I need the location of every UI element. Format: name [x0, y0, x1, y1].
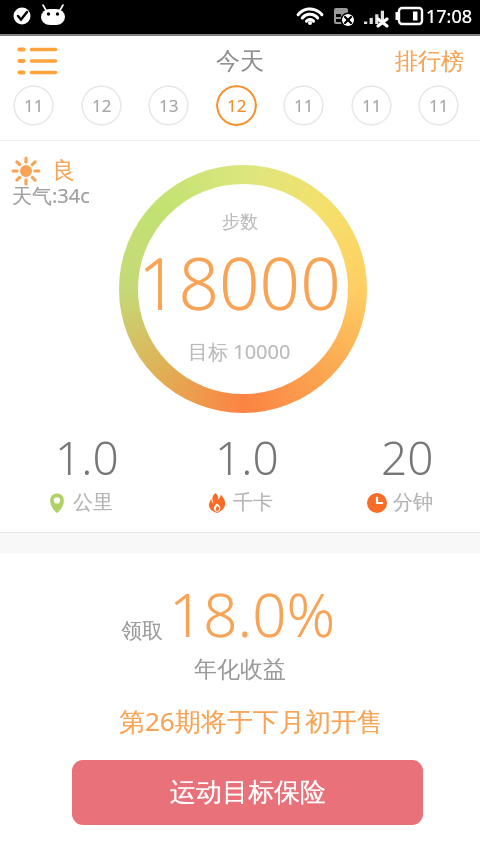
staticText: 12: [227, 94, 247, 117]
staticText: 1.0: [55, 426, 119, 489]
staticText: 千卡: [233, 490, 273, 515]
button[interactable]: 12: [81, 85, 122, 126]
staticText: 11: [429, 94, 449, 117]
staticText: 1.0: [215, 426, 279, 489]
staticText: 11: [362, 94, 382, 117]
staticText: 13: [159, 94, 179, 117]
staticText: 11: [24, 94, 44, 117]
staticText: 排行榜: [395, 47, 464, 76]
staticText: 目标 10000: [188, 338, 291, 365]
staticText: 公里: [73, 490, 113, 515]
button[interactable]: 排行榜: [395, 47, 464, 76]
staticText: 领取: [121, 618, 163, 644]
button[interactable]: 11: [351, 85, 392, 126]
button[interactable]: 11: [283, 85, 324, 126]
staticText: 今天: [216, 46, 264, 76]
button[interactable]: 13: [148, 85, 189, 126]
staticText: 分钟: [393, 490, 433, 515]
button[interactable]: 11: [418, 85, 459, 126]
staticText: 12: [92, 94, 112, 117]
button[interactable]: 12: [216, 85, 257, 126]
staticText: 运动目标保险: [170, 776, 326, 809]
staticText: 天气:34c: [12, 182, 90, 209]
staticText: 第26期将于下月初开售: [119, 703, 383, 739]
staticText: 18.0%: [169, 573, 336, 655]
staticText: 18000: [138, 234, 341, 331]
staticText: 20: [381, 426, 434, 489]
staticText: 良: [52, 156, 75, 185]
staticText: 年化收益: [194, 655, 286, 684]
staticText: 17:08: [426, 4, 473, 29]
button[interactable]: 11: [13, 85, 54, 126]
button[interactable]: Menu: [10, 39, 54, 83]
button[interactable]: 运动目标保险: [72, 760, 423, 825]
staticText: 步数: [222, 211, 258, 234]
staticText: 11: [294, 94, 314, 117]
